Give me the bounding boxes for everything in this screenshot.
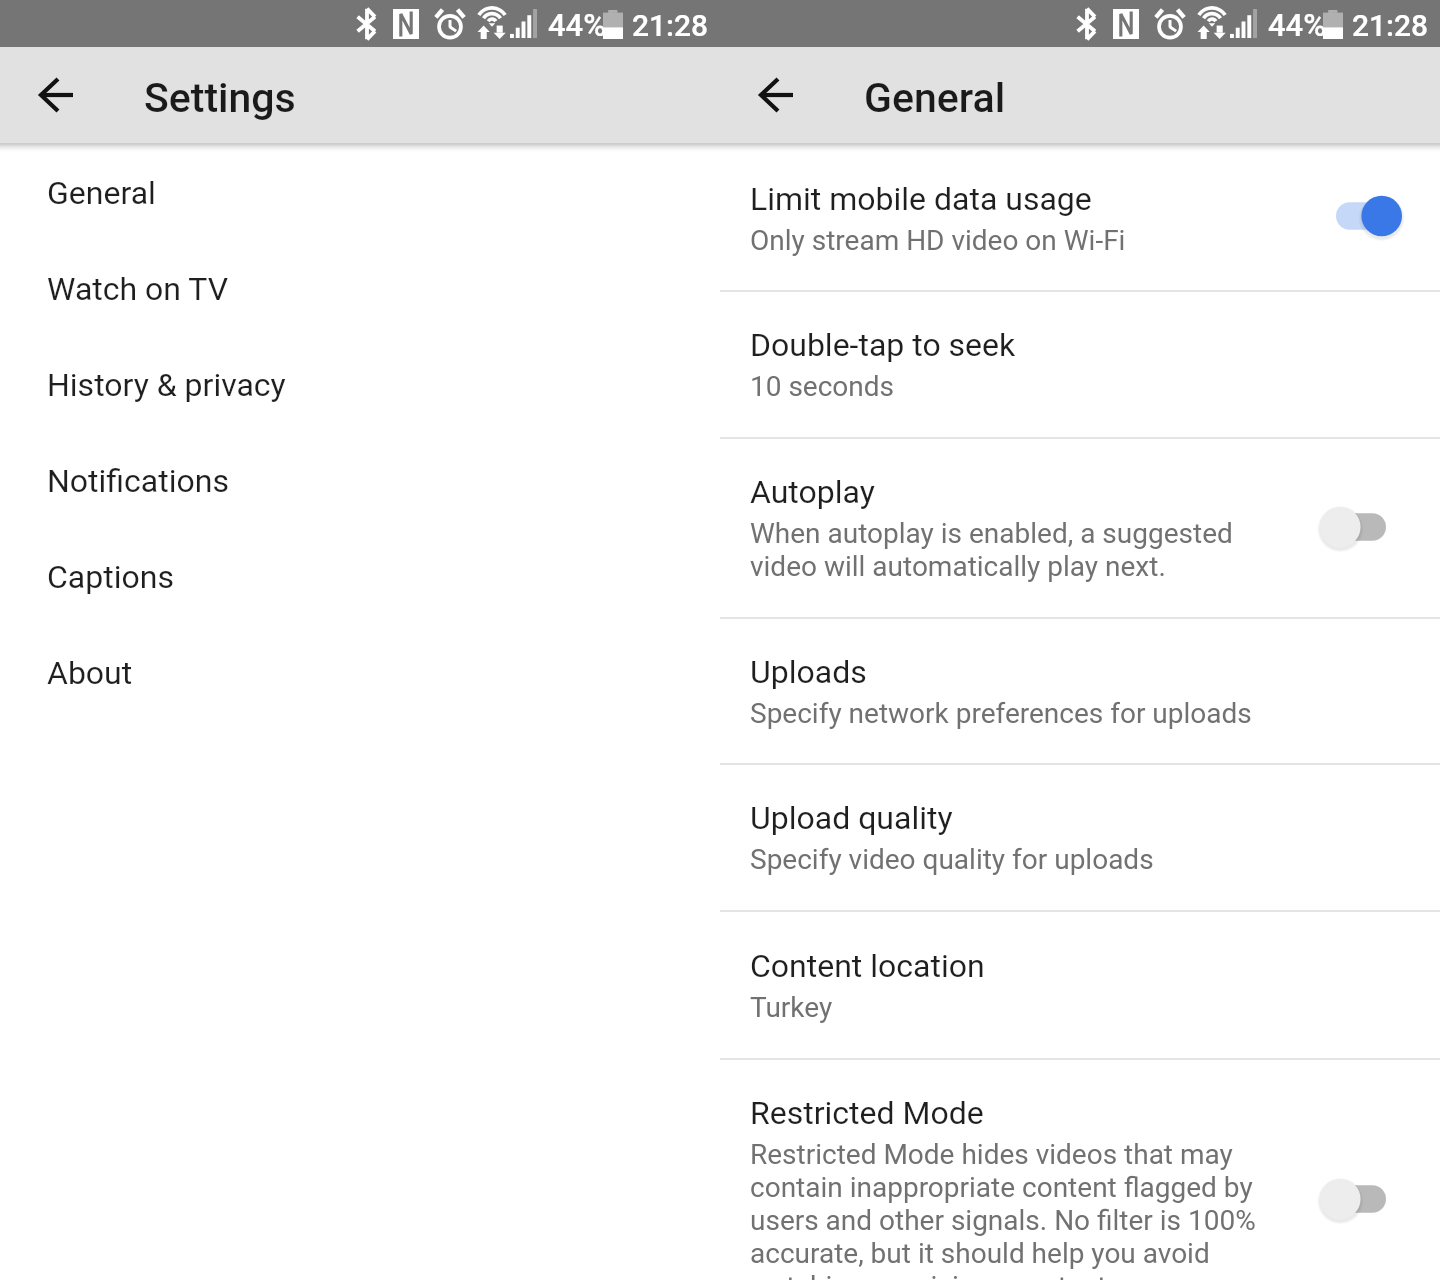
- button[interactable]: Content location: [720, 912, 1440, 1058]
- staticText: Watch on TV: [47, 270, 229, 308]
- staticText: Captions: [47, 558, 174, 596]
- button[interactable]: Double-tap to seek: [720, 292, 1440, 437]
- button[interactable]: General: [0, 152, 720, 248]
- button[interactable]: Autoplay: [720, 439, 1440, 617]
- staticText: accurate, but it should help you avoid: [750, 1237, 1210, 1270]
- staticText: Settings: [144, 74, 296, 122]
- staticText: When autoplay is enabled, a suggested: [750, 517, 1233, 550]
- staticText: Restricted Mode: [750, 1094, 984, 1132]
- staticText: About: [47, 654, 133, 692]
- staticText: 44%: [548, 7, 607, 43]
- staticText: Notifications: [47, 462, 229, 500]
- staticText: 44%: [1268, 7, 1327, 43]
- staticText: Specify video quality for uploads: [750, 843, 1154, 876]
- staticText: Limit mobile data usage: [750, 180, 1092, 218]
- button[interactable]: About: [0, 632, 720, 728]
- staticText: General: [47, 174, 156, 212]
- staticText: Uploads: [750, 653, 867, 691]
- staticText: Only stream HD video on Wi-Fi: [750, 224, 1126, 257]
- button[interactable]: Watch on TV: [0, 248, 720, 344]
- staticText: Upload quality: [750, 799, 953, 837]
- button[interactable]: Navigate up: [8, 47, 104, 143]
- staticText: 21:28: [1352, 8, 1429, 43]
- staticText: General: [864, 74, 1006, 122]
- staticText: Content location: [750, 947, 985, 985]
- staticText: watching suspicious content.: [750, 1270, 1114, 1280]
- staticText: Turkey: [750, 991, 833, 1024]
- staticText: 21:28: [632, 8, 709, 43]
- button[interactable]: Notifications: [0, 440, 720, 536]
- button[interactable]: Uploads: [720, 619, 1440, 763]
- staticText: Autoplay: [750, 473, 875, 511]
- staticText: video will automatically play next.: [750, 550, 1166, 583]
- staticText: Specify network preferences for uploads: [750, 697, 1252, 730]
- button[interactable]: Restricted Mode: [720, 1060, 1440, 1280]
- button[interactable]: Limit mobile data usage: [720, 152, 1440, 290]
- staticText: Restricted Mode hides videos that may: [750, 1138, 1233, 1171]
- button[interactable]: Upload quality: [720, 765, 1440, 910]
- button[interactable]: History & privacy: [0, 344, 720, 440]
- staticText: contain inappropriate content flagged by: [750, 1171, 1253, 1204]
- button[interactable]: Limit mobile data usage switch: [1316, 176, 1406, 256]
- staticText: users and other signals. No filter is 10…: [750, 1204, 1256, 1237]
- button[interactable]: Captions: [0, 536, 720, 632]
- button[interactable]: Navigate up: [728, 47, 824, 143]
- button[interactable]: Autoplay switch: [1316, 487, 1406, 567]
- staticText: Double-tap to seek: [750, 326, 1016, 364]
- staticText: History & privacy: [47, 366, 286, 404]
- staticText: 10 seconds: [750, 370, 895, 403]
- button[interactable]: Restricted Mode switch: [1316, 1159, 1406, 1239]
